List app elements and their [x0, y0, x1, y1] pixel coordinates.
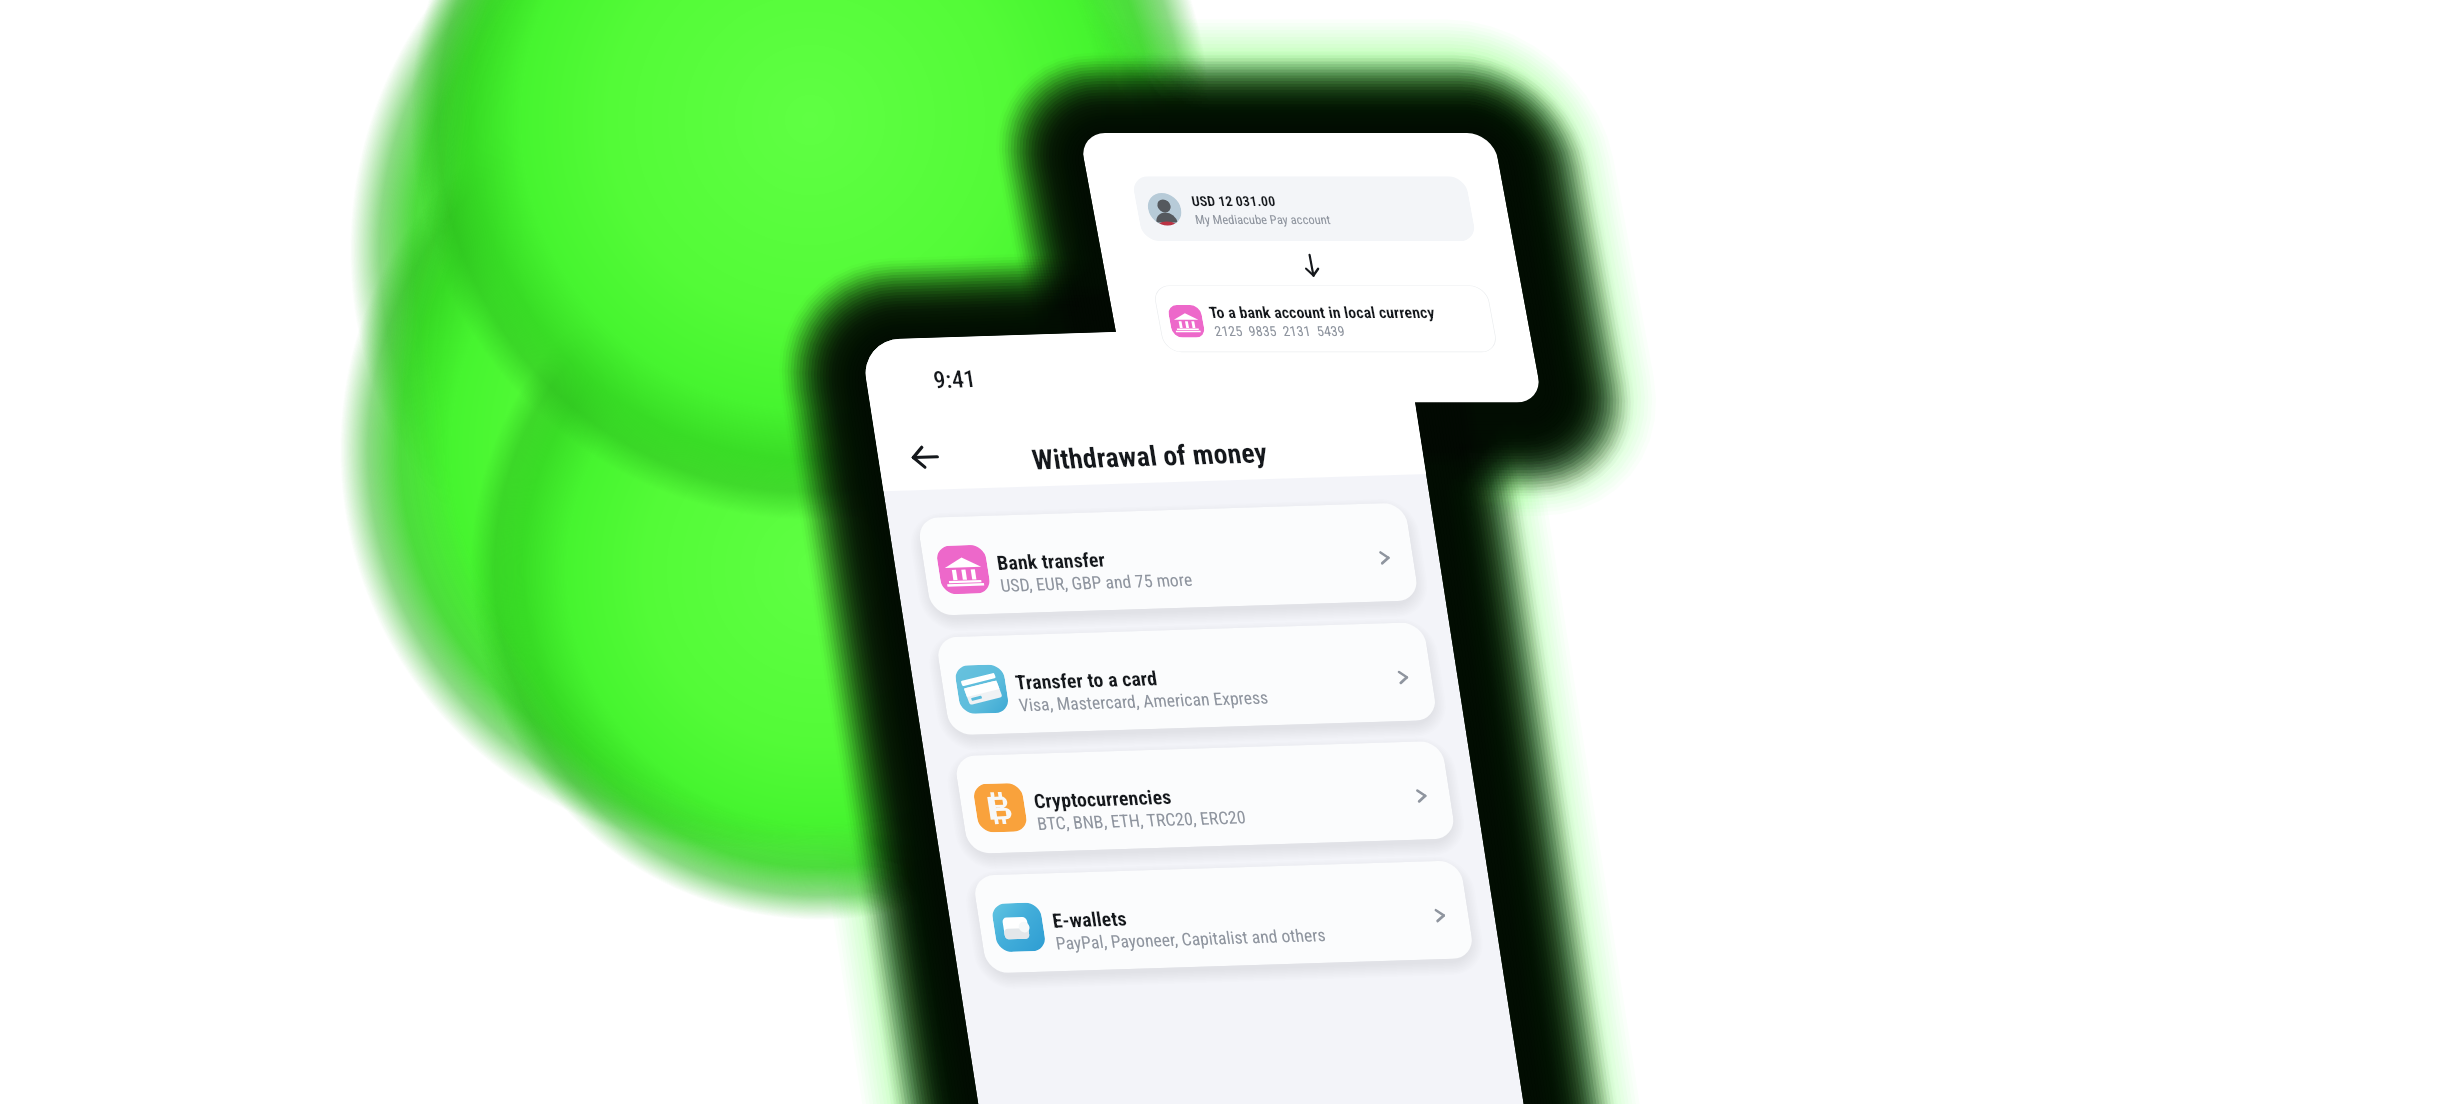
- staticText: USD 12 031.00: [1184, 152, 1284, 250]
- staticText: To a bank account in local currency: [1200, 192, 1445, 433]
- staticText: Transfer to a card: [1004, 598, 1169, 761]
- staticText: Visa, Mastercard, American Express: [1009, 568, 1279, 836]
- button[interactable]: Transfer to a card: [893, 389, 1480, 969]
- button[interactable]: E-wallets: [930, 627, 1517, 1104]
- staticText: E-wallets: [1041, 871, 1138, 967]
- button[interactable]: USD 12 031.00: [1104, 12, 1504, 405]
- staticText: Withdrawal of money: [1016, 324, 1284, 589]
- staticText: PayPal, Payoneer, Capitalist and others: [1045, 796, 1336, 1084]
- button[interactable]: Back: [898, 430, 952, 484]
- staticText: USD, EUR, GBP and 75 more: [990, 478, 1203, 688]
- button[interactable]: To a bank account in local currency: [1124, 121, 1526, 516]
- staticText: My Mediacube Pay account: [1188, 146, 1339, 294]
- button[interactable]: Cryptocurrencies: [912, 507, 1498, 1087]
- staticText: 9:41: [920, 345, 991, 415]
- staticText: 2125 9835 2131 5439: [1207, 259, 1353, 402]
- staticText: Bank transfer: [985, 496, 1116, 626]
- staticText: BTC, BNB, ETH, TRC20, ERC20: [1027, 707, 1257, 935]
- button[interactable]: Bank transfer: [875, 269, 1461, 849]
- staticText: Cryptocurrencies: [1022, 719, 1183, 878]
